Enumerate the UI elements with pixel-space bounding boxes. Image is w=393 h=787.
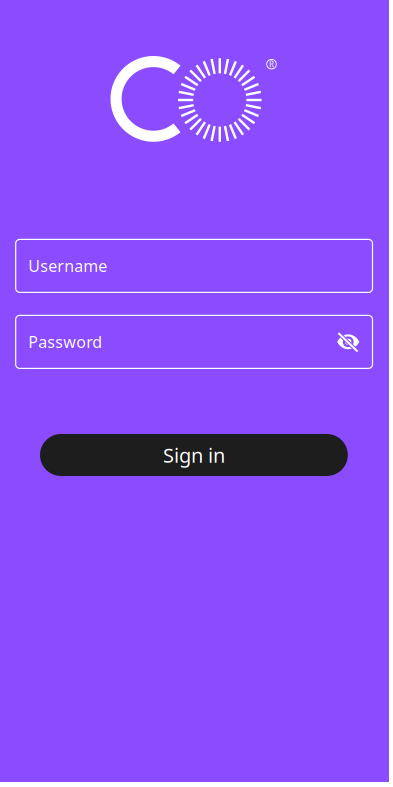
button[interactable]: Sign in: [40, 434, 348, 476]
staticText: R: [269, 59, 274, 70]
button[interactable]: Username: [16, 239, 372, 292]
button[interactable]: Password: [16, 315, 372, 368]
staticText: Password: [28, 331, 102, 352]
staticText: Username: [28, 255, 107, 276]
staticText: Sign in: [163, 442, 225, 468]
button[interactable]: Show password: [336, 330, 360, 354]
